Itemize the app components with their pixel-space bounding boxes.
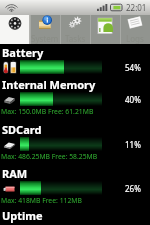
- staticText: Internal Memory: [2, 77, 96, 92]
- button[interactable]: Tasks: [60, 15, 90, 44]
- staticText: Uptime: [2, 208, 43, 223]
- staticText: Max: 486.25MB Free: 58.25MB: [1, 152, 98, 161]
- button[interactable]: System: [30, 15, 60, 44]
- staticText: 54%: [125, 62, 141, 73]
- staticText: 11%: [125, 139, 141, 150]
- button[interactable]: Apps: [90, 15, 120, 44]
- staticText: 22:01: [126, 2, 147, 13]
- staticText: RAM: [2, 166, 28, 181]
- button[interactable]: Dashboard: [0, 15, 30, 44]
- staticText: Max: 418MB Free: 112MB: [1, 196, 82, 205]
- button[interactable]: Logs: [120, 15, 150, 44]
- staticText: 26%: [125, 183, 141, 194]
- staticText: SDCard: [2, 122, 42, 137]
- staticText: Battery: [2, 45, 44, 60]
- staticText: Max: 150.0MB Free: 61.21MB: [1, 107, 94, 116]
- staticText: 40%: [125, 94, 141, 105]
